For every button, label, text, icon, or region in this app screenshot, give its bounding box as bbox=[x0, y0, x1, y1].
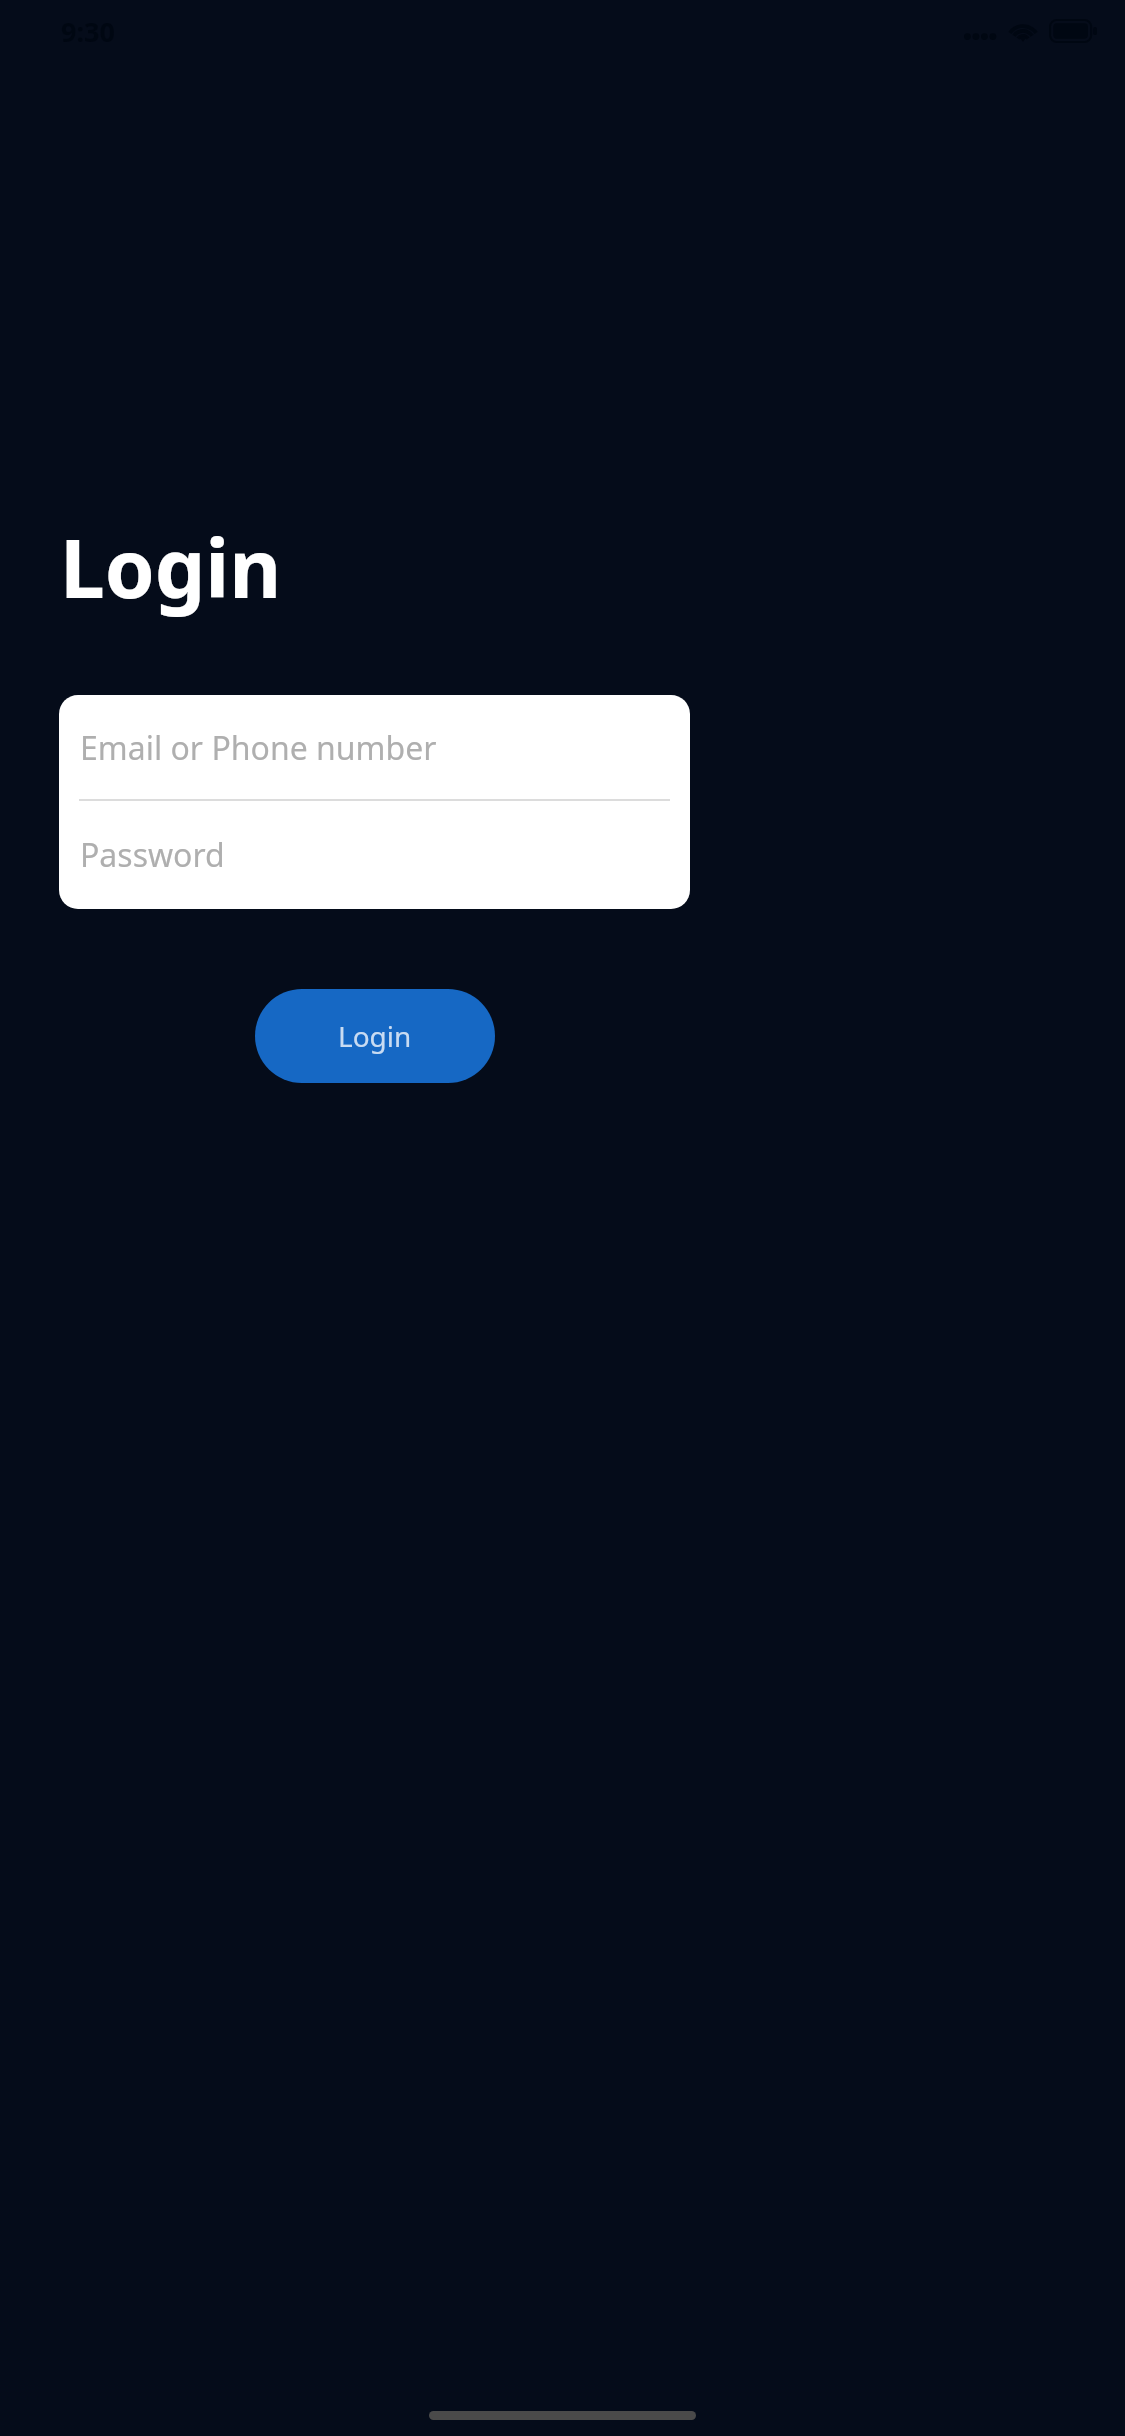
staticText: 9:30 bbox=[61, 13, 115, 50]
button[interactable]: Email or Phone number bbox=[59, 695, 690, 801]
staticText: Email or Phone number bbox=[80, 726, 437, 770]
staticText: Login bbox=[338, 1017, 412, 1055]
staticText: Password bbox=[80, 833, 225, 877]
button[interactable]: Login bbox=[255, 989, 495, 1083]
staticText: Login bbox=[60, 512, 282, 621]
button[interactable]: Password bbox=[59, 801, 690, 909]
